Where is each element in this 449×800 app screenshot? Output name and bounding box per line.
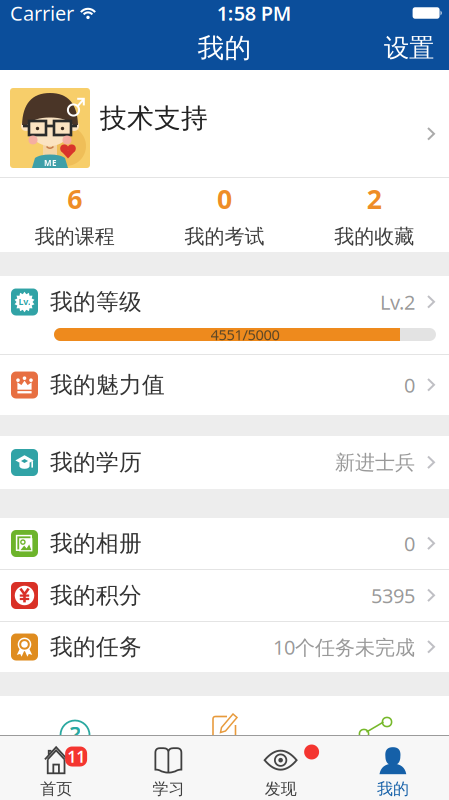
staticText: Lv. bbox=[14, 292, 34, 311]
button[interactable]: 发现 bbox=[224, 736, 337, 800]
button[interactable]: 我的 bbox=[337, 736, 449, 800]
staticText: 10个任务未完成 bbox=[273, 634, 415, 660]
staticText: 我的魅力值 bbox=[50, 371, 165, 399]
button[interactable]: 2 bbox=[299, 178, 449, 252]
staticText: ME bbox=[44, 158, 56, 168]
staticText: 0 bbox=[404, 372, 415, 398]
staticText: 5395 bbox=[371, 582, 415, 609]
button[interactable]: 首页 bbox=[0, 736, 112, 800]
button[interactable]: 我的相册 bbox=[0, 518, 449, 569]
button[interactable]: 我的学历 bbox=[0, 436, 449, 489]
staticText: 我的任务 bbox=[50, 633, 142, 661]
staticText: 2 bbox=[367, 181, 382, 216]
staticText: 我的 bbox=[377, 779, 409, 799]
button[interactable]: Lv. bbox=[0, 276, 449, 328]
staticText: Carrier bbox=[10, 0, 74, 26]
staticText: 我的相册 bbox=[50, 530, 142, 557]
button[interactable]: 0 bbox=[150, 178, 299, 252]
button[interactable]: 我的积分 bbox=[0, 570, 449, 621]
staticText: ? bbox=[70, 720, 80, 750]
button[interactable]: ME bbox=[0, 70, 449, 177]
staticText: 我的学历 bbox=[50, 449, 142, 476]
staticText: 设置 bbox=[384, 32, 434, 63]
button[interactable]: 问卷调查 bbox=[209, 712, 239, 742]
staticText: 学习 bbox=[152, 779, 184, 799]
staticText: 我的课程 bbox=[35, 224, 115, 249]
staticText: 新进士兵 bbox=[335, 450, 415, 475]
staticText: 0 bbox=[217, 181, 232, 216]
staticText: 我的等级 bbox=[50, 288, 142, 316]
staticText: 技术支持 bbox=[100, 102, 208, 135]
staticText: 首页 bbox=[40, 779, 72, 799]
button[interactable]: 分享 bbox=[359, 696, 393, 752]
button[interactable]: 我的任务 bbox=[0, 622, 449, 672]
button[interactable]: 常见问题 bbox=[60, 720, 90, 750]
staticText: 0 bbox=[404, 530, 415, 557]
button[interactable]: 我的魅力值 bbox=[0, 355, 449, 415]
staticText: 我的收藏 bbox=[334, 224, 414, 249]
staticText: 我的考试 bbox=[184, 224, 264, 249]
staticText: 4551/5000 bbox=[210, 325, 279, 344]
button[interactable]: 设置 bbox=[384, 32, 449, 63]
button[interactable]: 学习 bbox=[112, 736, 224, 800]
staticText: 6 bbox=[67, 181, 82, 216]
staticText: Lv.2 bbox=[380, 289, 415, 315]
staticText: 我的 bbox=[197, 32, 251, 64]
staticText: 发现 bbox=[265, 779, 297, 799]
staticText: 1:58 PM bbox=[217, 0, 292, 26]
staticText: 11 bbox=[67, 746, 85, 767]
button[interactable]: 6 bbox=[0, 178, 150, 252]
staticText: 我的积分 bbox=[50, 582, 142, 609]
